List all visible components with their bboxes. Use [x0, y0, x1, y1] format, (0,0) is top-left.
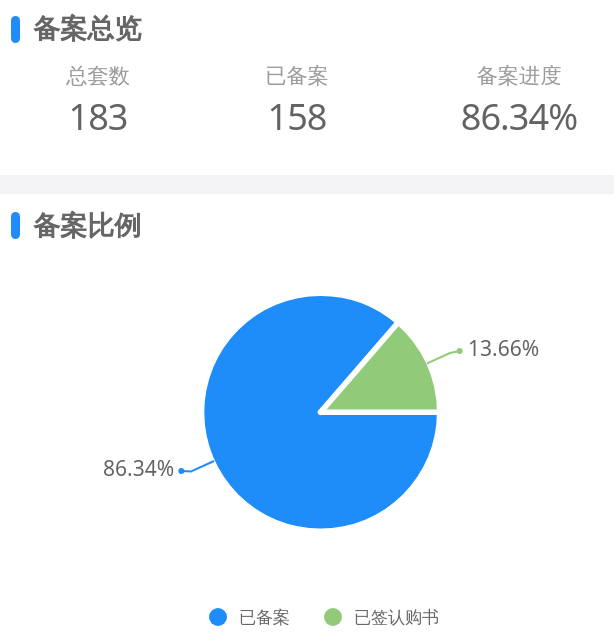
staticText: 86.34%	[419, 92, 614, 141]
staticText: 已备案	[197, 63, 397, 90]
other: 备案比例饼图：已备案 86.34%，已签认购书 13.66%	[0, 252, 614, 592]
staticText: 备案比例	[33, 209, 141, 243]
staticText: 已备案	[239, 607, 290, 628]
staticText: 备案总览	[33, 12, 141, 46]
button[interactable]: 备案总览	[0, 12, 614, 46]
staticText: 总套数	[0, 63, 198, 90]
button[interactable]: 已备案	[209, 604, 290, 630]
button[interactable]: 总套数	[0, 56, 198, 142]
staticText: 183	[0, 92, 198, 141]
staticText: 备案进度	[419, 63, 614, 90]
staticText: 158	[197, 92, 397, 141]
staticText: 86.34%	[103, 454, 175, 483]
button[interactable]: 已签认购书	[324, 604, 439, 630]
button[interactable]: 已备案	[197, 56, 397, 142]
button[interactable]: 备案进度	[419, 56, 614, 142]
staticText: 已签认购书	[354, 607, 439, 628]
button[interactable]: 备案比例	[0, 208, 614, 242]
staticText: 13.66%	[468, 334, 540, 363]
